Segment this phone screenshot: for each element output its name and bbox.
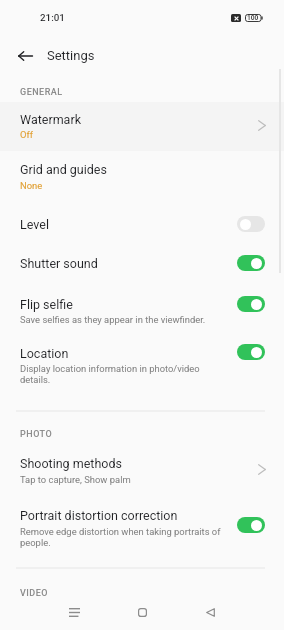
staticText: Save selfies as they appear in the viewf… — [20, 314, 218, 325]
staticText: Watermark — [20, 112, 81, 127]
staticText: Settings — [47, 48, 95, 63]
staticText: Display location information in photo/vi… — [20, 363, 218, 385]
staticText: Location — [20, 346, 69, 361]
staticText: Tap to capture, Show palm — [20, 474, 218, 485]
staticText: Level — [20, 217, 49, 232]
button[interactable]: Toggle on — [237, 344, 265, 360]
staticText: Shutter sound — [20, 256, 98, 271]
button[interactable]: Back — [192, 594, 228, 630]
staticText: 21:01 — [40, 12, 65, 23]
staticText: PHOTO — [20, 429, 53, 440]
staticText: Flip selfie — [20, 297, 73, 312]
button[interactable]: Toggle on — [237, 517, 265, 533]
button[interactable]: Recent apps — [56, 594, 92, 630]
button[interactable] — [0, 102, 284, 151]
staticText: None — [20, 180, 218, 191]
button[interactable]: Toggle on — [237, 255, 265, 271]
button[interactable]: Home — [124, 594, 160, 630]
staticText: Remove edge distortion when taking portr… — [20, 526, 222, 548]
staticText: Grid and guides — [20, 162, 107, 177]
staticText: 100 — [247, 14, 259, 22]
staticText: Shooting methods — [20, 456, 122, 471]
button[interactable]: Toggle on — [237, 296, 265, 312]
staticText: GENERAL — [20, 87, 63, 98]
staticText: Portrait distortion correction — [20, 508, 178, 523]
button[interactable]: Back — [13, 44, 37, 68]
staticText: VIDEO — [20, 588, 49, 599]
button[interactable]: Toggle off — [237, 216, 265, 232]
staticText: Off — [20, 129, 218, 140]
